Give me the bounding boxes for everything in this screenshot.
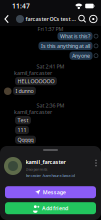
staticText: 11:47 (12, 2, 30, 10)
staticText: 111 (17, 126, 26, 134)
button[interactable]: Search (76, 12, 89, 26)
button[interactable]: More options (91, 157, 101, 167)
staticText: Is this anything at all (41, 42, 90, 49)
staticText: kamil_farcaster (14, 108, 52, 116)
staticText: Sat 2:41 PM (36, 63, 64, 70)
staticText: Anyone (72, 52, 90, 59)
staticText: Fri 1:37 PM (37, 25, 63, 33)
button[interactable]: Message (0, 178, 101, 198)
staticText: Qqqqq (17, 136, 33, 143)
staticText: Message (43, 189, 66, 196)
staticText: kamil_farcaster (25, 158, 65, 166)
staticText: Sat 2:36 PM (36, 102, 64, 109)
staticText: farcaster OCs test (robot… (25, 15, 76, 23)
staticText: Test (17, 117, 28, 124)
staticText: Dao permits (25, 167, 47, 172)
staticText: Add friend (42, 205, 68, 212)
staticText: HELLOOOOOO (17, 77, 54, 85)
button[interactable]: Settings (89, 12, 101, 26)
button[interactable]: Add friend (0, 198, 101, 214)
staticText: What is this? (60, 33, 90, 40)
button[interactable]: Back (0, 12, 16, 26)
staticText: I dunno (15, 87, 33, 94)
staticText: kamil_farcaster (14, 69, 52, 76)
staticText: farcaster /samhaure.base.id (25, 173, 74, 178)
